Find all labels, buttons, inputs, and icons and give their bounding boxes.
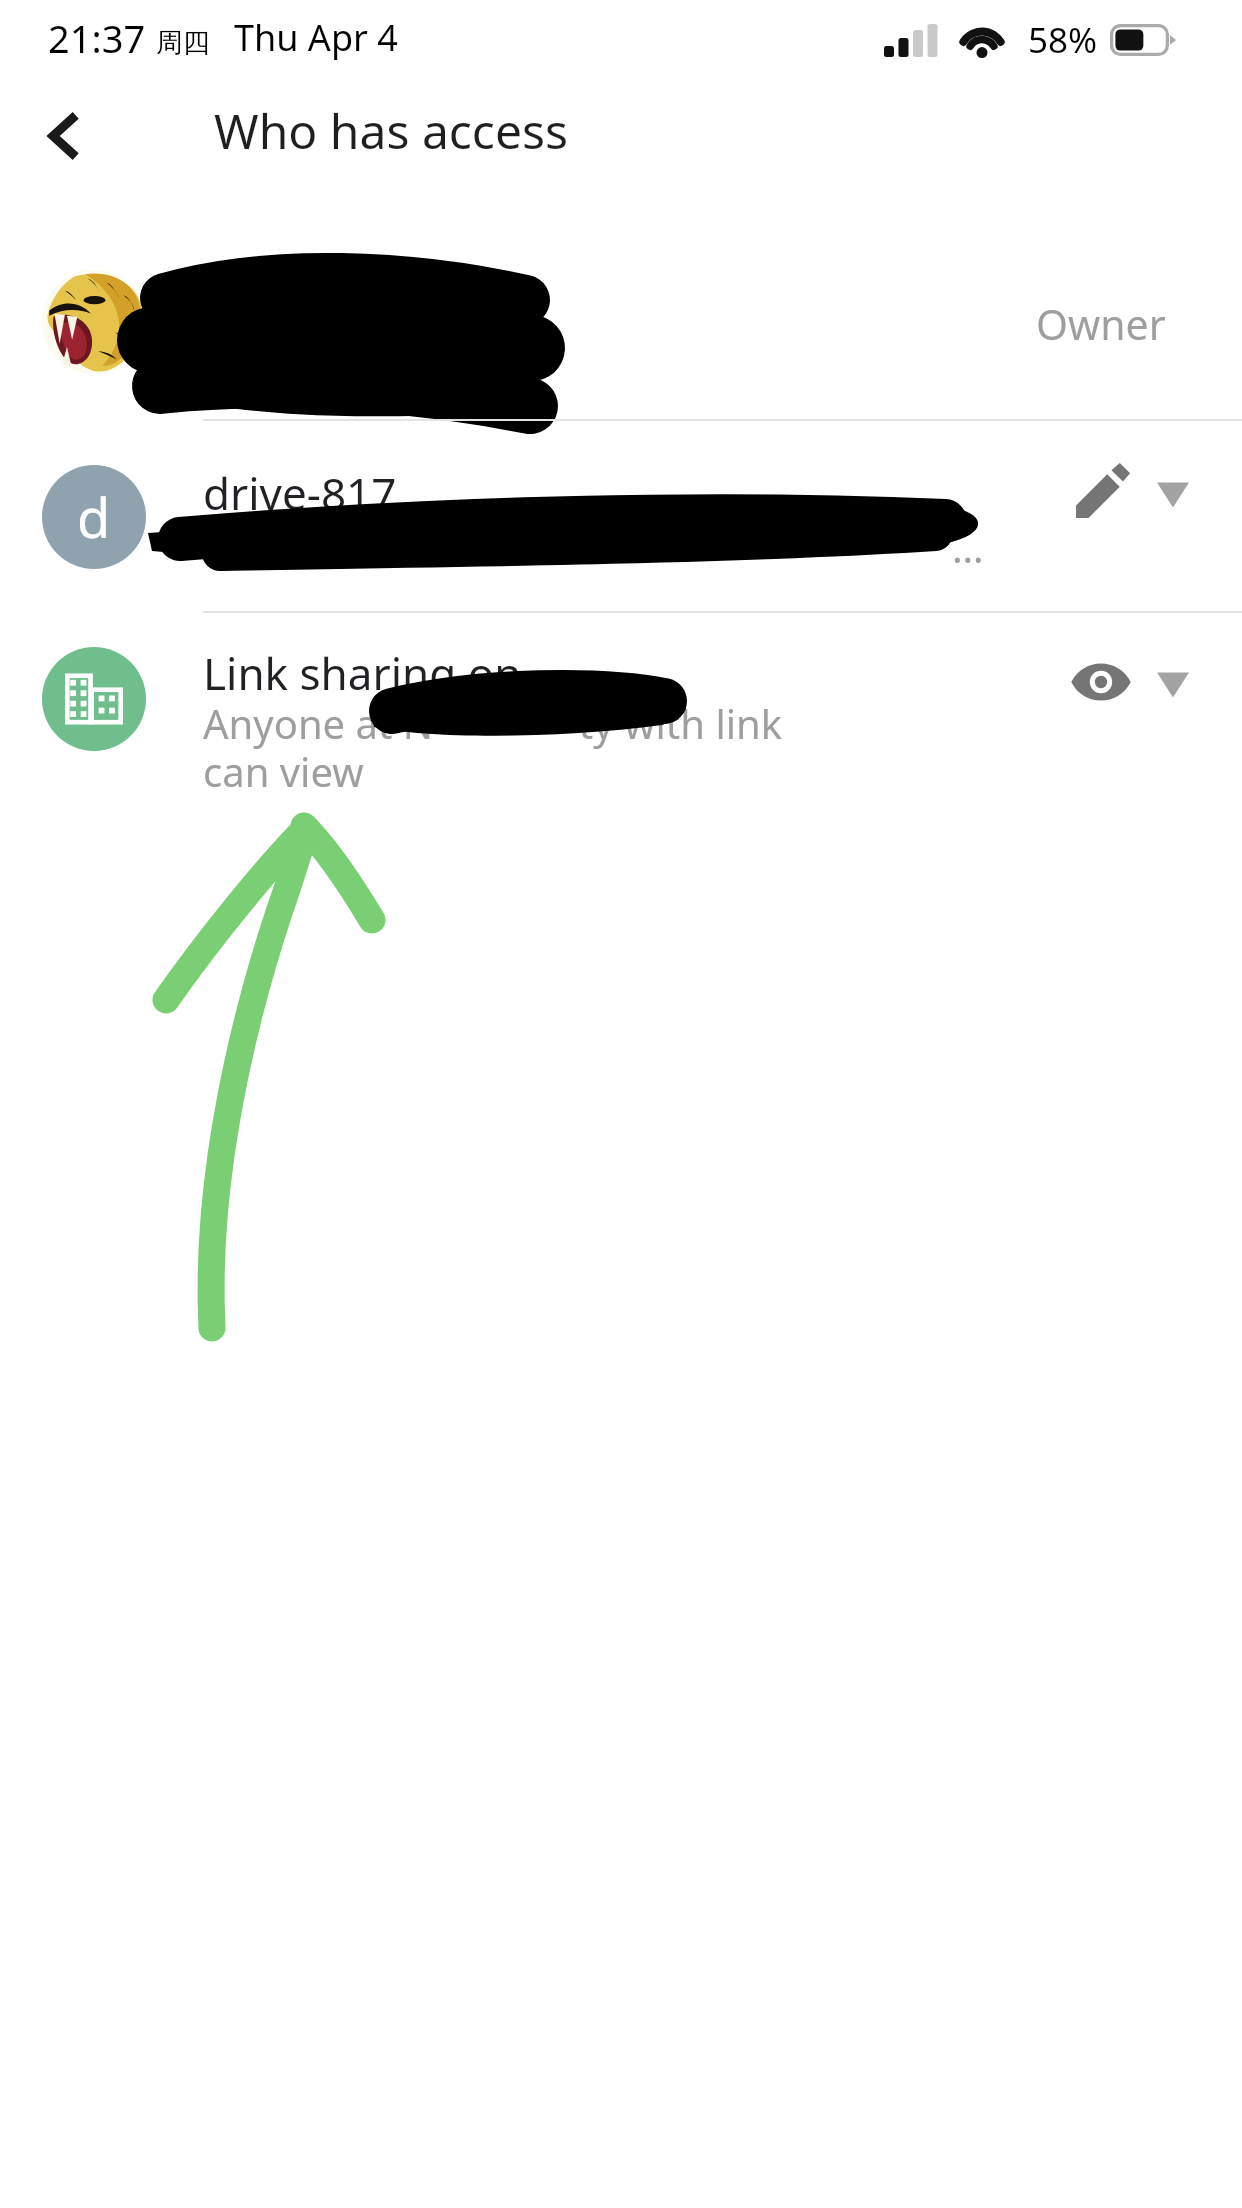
button[interactable]: Change link sharing: [1144, 655, 1202, 713]
button[interactable]: d: [0, 421, 1242, 611]
staticText: 周四: [156, 26, 210, 60]
staticText: …: [952, 520, 984, 574]
button[interactable]: Viewer access: [1058, 639, 1144, 725]
staticText: 21:37: [48, 12, 146, 64]
button[interactable]: Change permission: [1144, 465, 1202, 523]
staticText: Link sharing on: [203, 643, 522, 703]
staticText: Who has access: [214, 98, 568, 163]
button[interactable]: Back: [22, 94, 106, 178]
staticText: Owner: [1036, 296, 1166, 352]
button[interactable]: Owner: [0, 240, 1242, 420]
staticText: Anyone at N ty with link: [203, 696, 783, 750]
staticText: Thu Apr 4: [234, 13, 398, 62]
staticText: drive-817: [203, 463, 397, 523]
button[interactable]: Edit permission: [1058, 449, 1144, 535]
staticText: can view: [203, 744, 364, 798]
button[interactable]: Link sharing on: [0, 613, 1242, 808]
staticText: drive-8: [203, 520, 334, 574]
staticText: d: [77, 480, 111, 554]
staticText: 58%: [1028, 16, 1098, 64]
